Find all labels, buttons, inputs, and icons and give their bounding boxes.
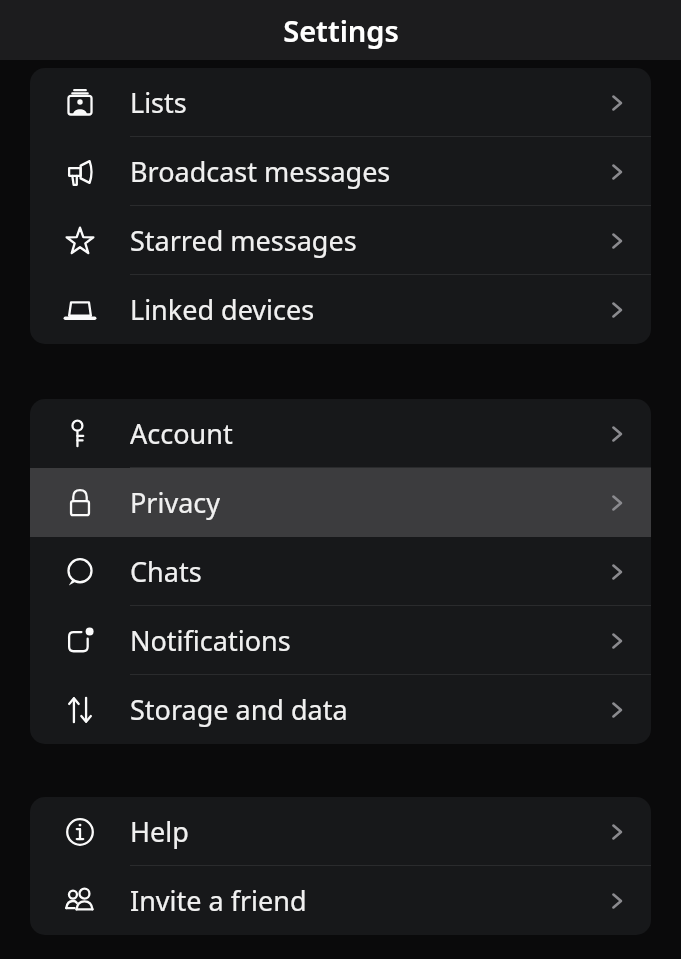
button[interactable]: Help [30, 797, 651, 866]
staticText: Invite a friend [130, 882, 583, 919]
button[interactable]: Broadcast messages [30, 137, 651, 206]
staticText: Notifications [130, 622, 583, 659]
button[interactable]: Linked devices [30, 275, 651, 344]
staticText: Help [130, 813, 583, 850]
staticText: Storage and data [130, 691, 583, 728]
button[interactable]: Invite a friend [30, 866, 651, 935]
button[interactable]: Starred messages [30, 206, 651, 275]
button[interactable]: Privacy [30, 468, 651, 537]
staticText: Linked devices [130, 291, 583, 328]
button[interactable]: Notifications [30, 606, 651, 675]
button[interactable]: Lists [30, 68, 651, 137]
button[interactable]: Chats [30, 537, 651, 606]
staticText: Starred messages [130, 222, 583, 259]
staticText: Settings [283, 11, 399, 50]
staticText: Chats [130, 553, 583, 590]
staticText: Account [130, 415, 583, 452]
button[interactable]: Storage and data [30, 675, 651, 744]
button[interactable]: Account [30, 399, 651, 468]
staticText: Privacy [130, 484, 583, 521]
staticText: Lists [130, 84, 583, 121]
staticText: Broadcast messages [130, 153, 583, 190]
